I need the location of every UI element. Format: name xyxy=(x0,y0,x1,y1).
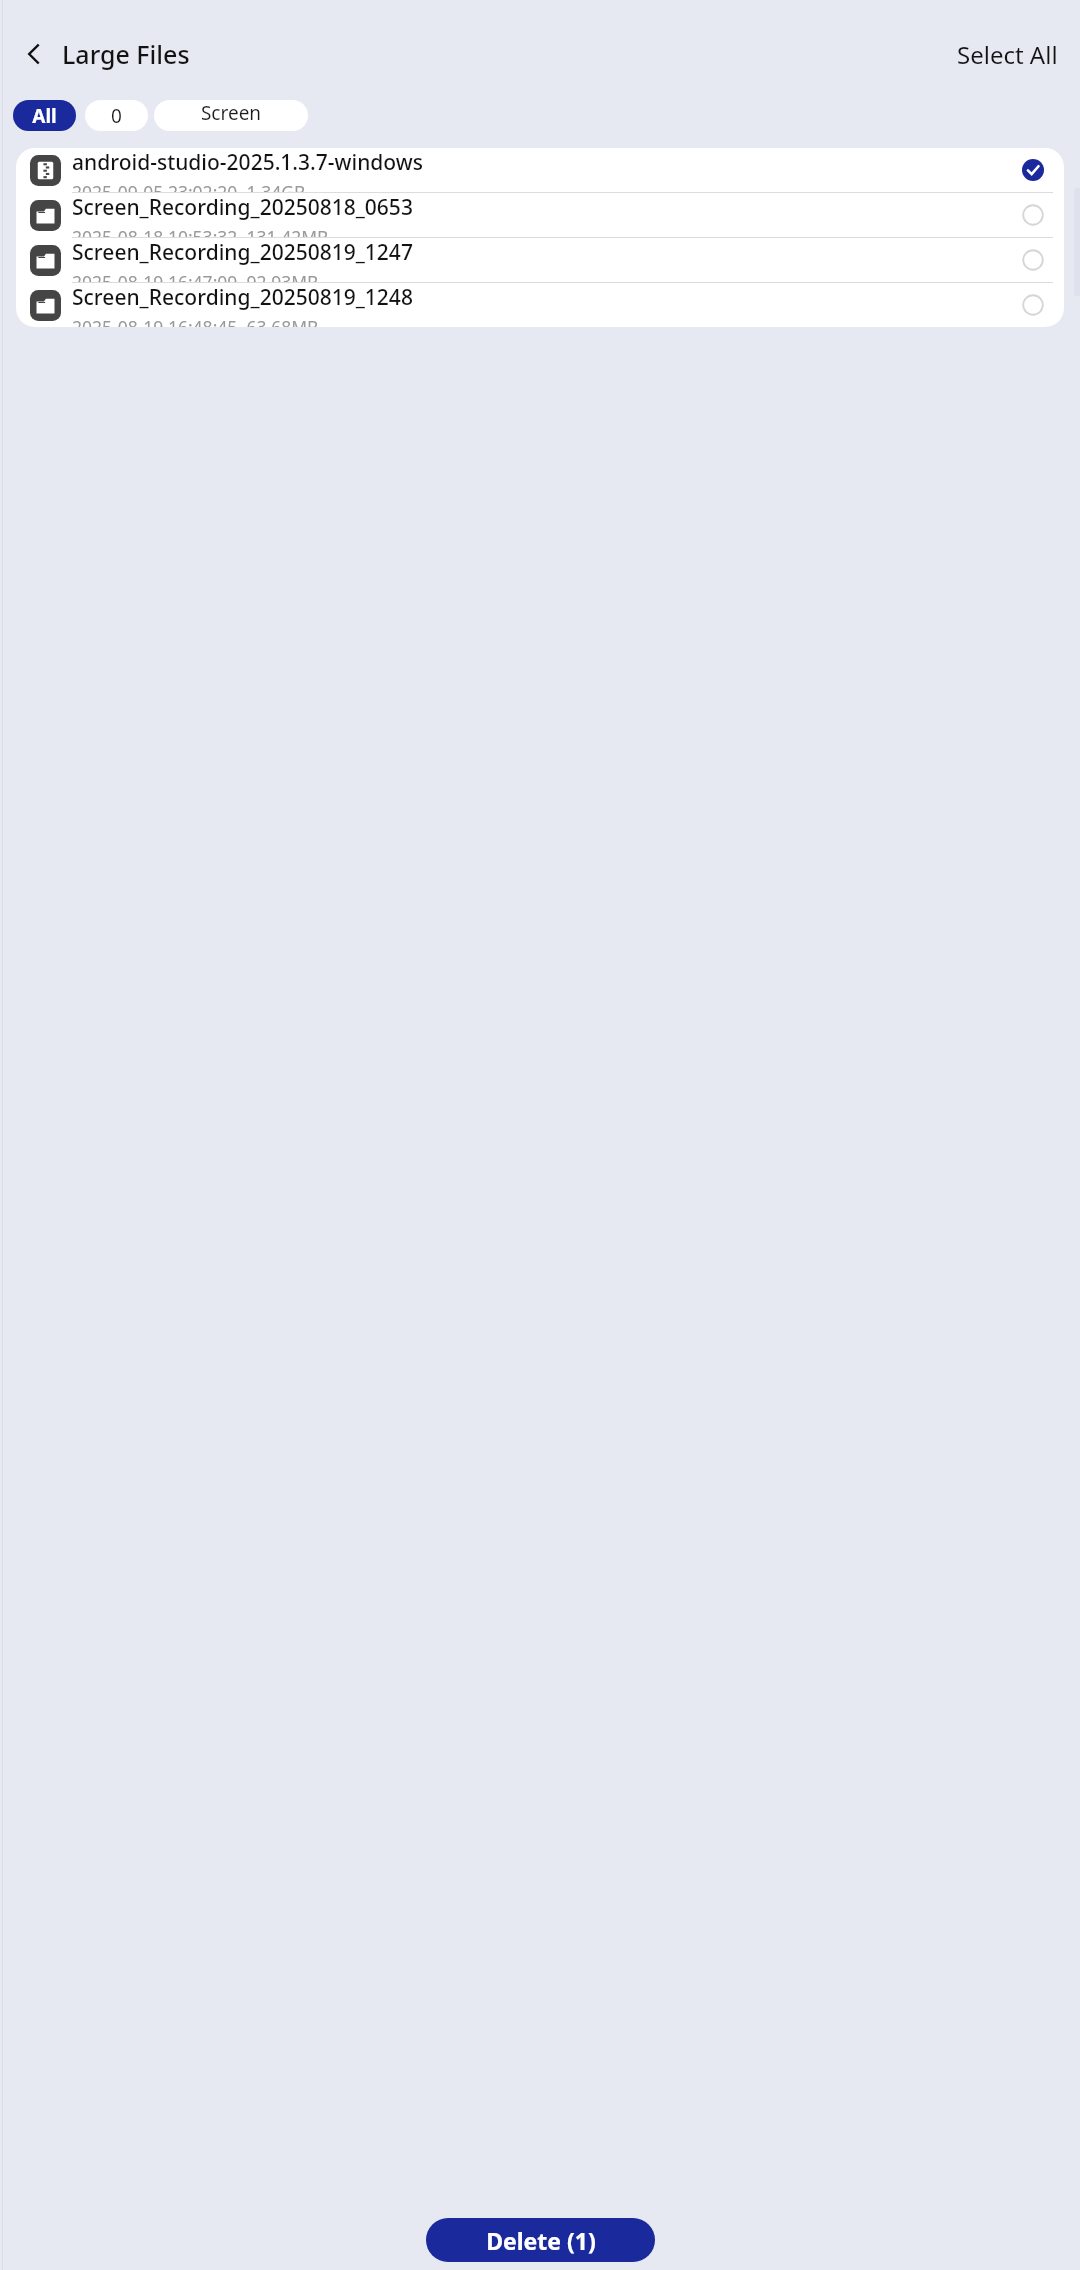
button[interactable]: Screen_Recording_20250819_1248 xyxy=(16,283,1064,327)
button[interactable]: Screen recordings xyxy=(154,100,308,131)
staticText: 2025-08-18 10:53:32 131.42MB xyxy=(72,225,329,237)
staticText: 0 xyxy=(111,103,122,129)
staticText: Screen_Recording_20250818_0653 xyxy=(72,193,413,222)
staticText: Screen recordings xyxy=(154,100,308,131)
staticText: 2025-09-05 23:02:20 1.34GB xyxy=(72,180,306,192)
staticText: 2025-08-19 16:47:09 92.93MB xyxy=(72,270,319,282)
button[interactable]: Back xyxy=(12,32,56,76)
staticText: Screen_Recording_20250819_1247 xyxy=(72,238,413,267)
staticText: 2025-08-19 16:48:45 63.68MB xyxy=(72,315,319,327)
staticText: All xyxy=(32,103,57,129)
button[interactable]: Not selected xyxy=(1018,290,1048,320)
button[interactable]: Select All xyxy=(943,30,1072,79)
button[interactable]: Not selected xyxy=(1018,200,1048,230)
button[interactable]: 0 xyxy=(85,100,148,131)
button[interactable]: All xyxy=(13,100,76,131)
button[interactable]: Screen_Recording_20250818_0653 xyxy=(16,193,1064,238)
staticText: Select All xyxy=(957,38,1058,71)
button[interactable]: Screen_Recording_20250819_1247 xyxy=(16,238,1064,283)
staticText: Delete (1) xyxy=(486,2225,596,2256)
button[interactable]: Delete (1) xyxy=(426,2218,655,2262)
button[interactable]: Not selected xyxy=(1018,245,1048,275)
staticText: android-studio-2025.1.3.7-windows xyxy=(72,148,423,177)
button[interactable]: android-studio-2025.1.3.7-windows xyxy=(16,148,1064,193)
button[interactable]: Selected xyxy=(1018,155,1048,185)
staticText: Screen_Recording_20250819_1248 xyxy=(72,283,413,312)
staticText: Large Files xyxy=(62,37,190,71)
